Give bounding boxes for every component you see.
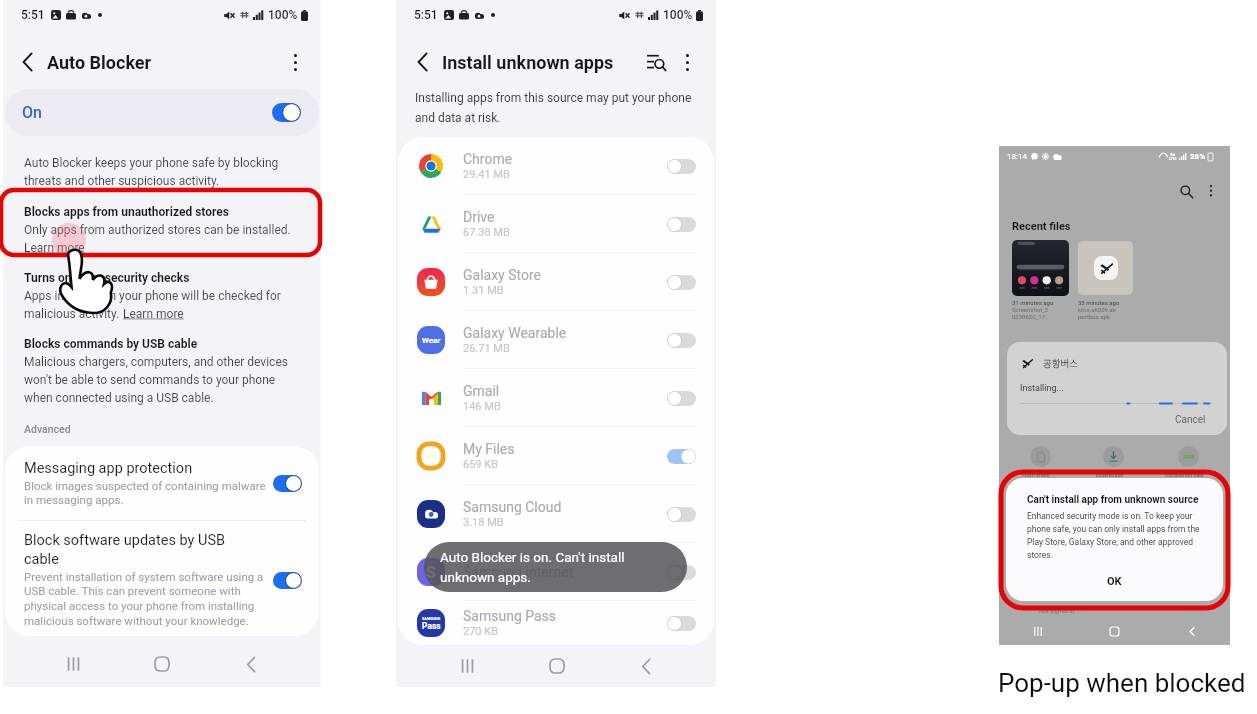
- staticText: Cancel: [1175, 414, 1206, 426]
- button[interactable]: Document files: [1030, 446, 1051, 467]
- staticText: Samsung Cloud: [463, 499, 562, 515]
- button[interactable]: Switch on: [272, 103, 301, 122]
- button[interactable]: More options: [283, 50, 307, 74]
- staticText: Messaging app protection: [24, 460, 193, 477]
- staticText: LTE1: [1169, 157, 1177, 161]
- staticText: Auto Blocker keeps your phone safe by bl…: [24, 156, 299, 188]
- staticText: Recent files: [1012, 220, 1071, 233]
- button[interactable]: More options: [677, 52, 697, 72]
- staticText: Pop-up when blocked: [998, 668, 1246, 698]
- button[interactable]: Back: [409, 49, 435, 75]
- button[interactable]: Switch off: [667, 333, 696, 348]
- staticText: Advanced: [24, 423, 71, 435]
- button[interactable]: Switch off: [667, 391, 696, 406]
- button[interactable]: Back: [206, 641, 295, 687]
- staticText: APK: [1183, 453, 1195, 460]
- button[interactable]: S: [398, 543, 714, 601]
- button[interactable]: SAMSUNG: [398, 601, 714, 645]
- staticText: Chrome: [463, 151, 513, 167]
- staticText: Block software updates by USB cable: [24, 532, 236, 568]
- staticText: Auto Blocker is on. Can't install unknow…: [440, 549, 681, 585]
- staticText: portbus.apk: [1078, 313, 1110, 320]
- staticText: Malicious chargers, computers, and other…: [24, 355, 303, 405]
- button[interactable]: Switch off: [667, 217, 696, 232]
- staticText: 5:51: [21, 8, 45, 22]
- button[interactable]: Search: [1176, 181, 1196, 201]
- staticText: malicious activity.: [24, 307, 123, 321]
- staticText: Downloads: [1096, 472, 1124, 478]
- button[interactable]: Installation files: [1178, 446, 1199, 467]
- staticText: Install unknown apps: [442, 52, 614, 73]
- button[interactable]: Cancel: [1175, 414, 1206, 426]
- button[interactable]: On: [5, 89, 319, 136]
- staticText: 100%: [663, 8, 693, 22]
- button[interactable]: Block software updates by USB cable: [5, 521, 319, 636]
- staticText: 18:14: [1007, 152, 1027, 161]
- staticText: OK: [1107, 575, 1122, 588]
- button[interactable]: Switch off: [667, 159, 696, 174]
- button[interactable]: Gmail: [398, 369, 714, 427]
- staticText: Pass: [422, 621, 441, 631]
- button[interactable]: Wear: [398, 311, 714, 369]
- button[interactable]: Switch on: [667, 449, 696, 464]
- staticText: Not signed in: [1039, 607, 1075, 614]
- staticText: Only apps from authorized stores can be …: [24, 223, 291, 237]
- staticText: Screenshot_2: [1012, 306, 1049, 313]
- staticText: 659 KB: [463, 458, 499, 471]
- staticText: Drive: [463, 209, 495, 225]
- button[interactable]: Home: [512, 645, 601, 687]
- button[interactable]: Learn more: [24, 241, 85, 255]
- staticText: 100%: [268, 8, 298, 22]
- button[interactable]: Drive: [398, 195, 714, 253]
- button[interactable]: Switch off: [667, 507, 696, 522]
- button[interactable]: Switch off: [667, 565, 696, 580]
- staticText: krco.a6009.air: [1078, 306, 1117, 313]
- staticText: Installing apps from this source may put…: [415, 91, 696, 125]
- staticText: Block images suspected of containing mal…: [24, 479, 266, 507]
- staticText: Galaxy Store: [463, 267, 541, 283]
- staticText: Wear: [422, 336, 441, 345]
- staticText: On: [22, 103, 42, 122]
- button[interactable]: Messaging app protection: [5, 446, 319, 520]
- button[interactable]: Learn more: [123, 307, 184, 321]
- button[interactable]: Switch on: [273, 572, 302, 589]
- button[interactable]: Switch off: [667, 616, 696, 631]
- button[interactable]: Switch off: [667, 275, 696, 290]
- button[interactable]: Back: [1153, 620, 1230, 642]
- staticText: Can't install app from unknown source: [1027, 494, 1199, 506]
- button[interactable]: More options: [1202, 181, 1220, 199]
- staticText: S: [426, 563, 436, 582]
- staticText: Blocks commands by USB cable: [24, 337, 198, 351]
- staticText: Apps installed on your phone will be che…: [24, 289, 281, 303]
- staticText: 67.38 MB: [463, 226, 510, 239]
- button[interactable]: Downloads: [1103, 446, 1124, 467]
- button[interactable]: Recent apps: [422, 645, 512, 687]
- staticText: From share: [1022, 472, 1050, 478]
- button[interactable]: Recent apps: [999, 620, 1076, 642]
- button[interactable]: Chrome: [398, 137, 714, 195]
- button[interactable]: Home: [1076, 620, 1153, 642]
- staticText: Prevent installation of system software …: [24, 570, 266, 628]
- staticText: 3.18 MB: [463, 516, 504, 529]
- staticText: Turns on extra security checks: [24, 271, 190, 285]
- staticText: SAMSUNG: [422, 616, 441, 620]
- staticText: Galaxy Wearable: [463, 325, 567, 341]
- button[interactable]: Switch on: [273, 475, 302, 492]
- button[interactable]: Search and sort: [645, 51, 667, 73]
- staticText: Installing...: [1020, 383, 1064, 394]
- button[interactable]: Home: [117, 641, 206, 687]
- staticText: 1.31 MB: [463, 284, 504, 297]
- staticText: 31 minutes ago: [1012, 299, 1054, 306]
- button[interactable]: Samsung Cloud: [398, 485, 714, 543]
- button[interactable]: My Files: [398, 427, 714, 485]
- button[interactable]: Galaxy Store: [398, 253, 714, 311]
- staticText: Vol: [1170, 153, 1176, 157]
- button[interactable]: Recent apps: [29, 641, 117, 687]
- staticText: 146 MB: [463, 400, 501, 413]
- staticText: Auto Blocker: [47, 52, 152, 73]
- button[interactable]: OK: [1006, 568, 1223, 594]
- staticText: 29.41 MB: [463, 168, 510, 181]
- button[interactable]: Back: [14, 49, 40, 75]
- button[interactable]: Back: [601, 645, 690, 687]
- staticText: Enhanced security mode is on. To keep yo…: [1027, 511, 1205, 560]
